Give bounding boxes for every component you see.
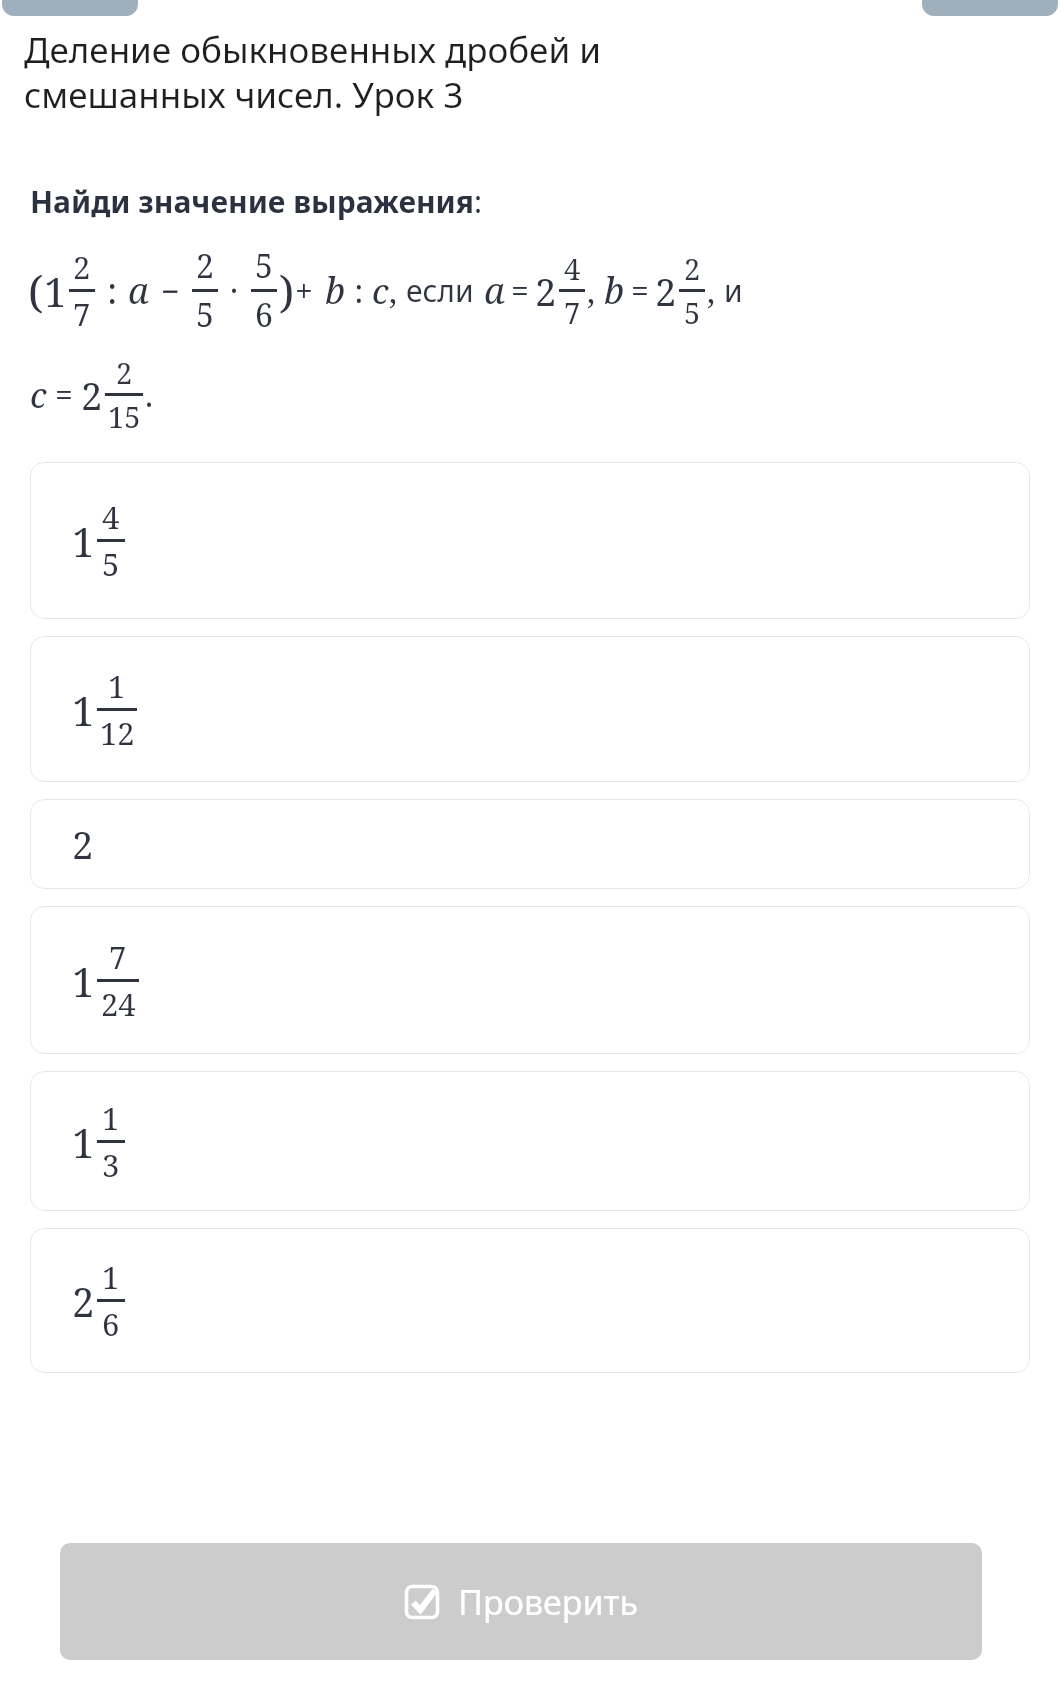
- staticText: 1: [72, 683, 95, 737]
- staticText: 2: [72, 818, 94, 870]
- staticText: 1: [44, 264, 67, 318]
- staticText: 5: [255, 244, 273, 288]
- staticText: 15: [108, 397, 141, 436]
- staticText: +: [295, 269, 313, 313]
- button[interactable]: 1: [30, 636, 1030, 782]
- button[interactable]: 2: [30, 799, 1030, 889]
- staticText: 5: [684, 293, 701, 332]
- staticText: Найди значение выражения: [30, 181, 474, 222]
- staticText: 12: [100, 712, 135, 754]
- staticText: :: [346, 269, 372, 313]
- staticText: 2: [196, 244, 214, 288]
- button[interactable]: 1: [30, 1071, 1030, 1211]
- staticText: 6: [255, 293, 273, 337]
- staticText: 3: [102, 1144, 120, 1186]
- button[interactable]: 1: [30, 906, 1030, 1054]
- staticText: 1: [102, 1097, 120, 1139]
- staticText: 2: [81, 369, 103, 421]
- staticText: 1: [108, 665, 126, 707]
- staticText: 6: [102, 1303, 120, 1345]
- staticText: ): [279, 261, 295, 321]
- staticText: c: [372, 268, 389, 314]
- staticText: 7: [109, 936, 127, 978]
- staticText: 2: [535, 265, 557, 317]
- staticText: 4: [564, 249, 581, 288]
- staticText: 24: [101, 983, 136, 1025]
- staticText: b: [604, 266, 625, 315]
- staticText: 5: [102, 543, 120, 585]
- staticText: b: [325, 266, 346, 315]
- staticText: ,: [707, 269, 716, 313]
- staticText: 2: [684, 249, 701, 288]
- staticText: ,: [389, 269, 398, 313]
- staticText: 2: [655, 265, 677, 317]
- staticText: c: [30, 372, 47, 418]
- staticText: −: [161, 269, 180, 313]
- staticText: a: [128, 266, 149, 315]
- staticText: 1: [72, 514, 95, 568]
- staticText: :: [107, 266, 118, 315]
- staticText: Деление обыкновенных дробей и смешанных …: [24, 26, 601, 119]
- staticText: и: [724, 270, 743, 311]
- staticText: (: [28, 261, 44, 321]
- button[interactable]: Проверить: [60, 1543, 982, 1660]
- staticText: 5: [196, 293, 214, 337]
- staticText: 7: [73, 293, 91, 335]
- button[interactable]: 1: [30, 462, 1030, 619]
- staticText: =: [631, 269, 649, 313]
- staticText: a: [484, 266, 505, 315]
- staticText: если: [406, 270, 474, 311]
- staticText: 1: [72, 1115, 95, 1169]
- staticText: 1: [102, 1256, 120, 1298]
- staticText: ,: [587, 269, 596, 313]
- staticText: Проверить: [458, 1579, 638, 1625]
- staticText: 2: [73, 246, 91, 288]
- staticText: 4: [102, 496, 120, 538]
- staticText: 2: [116, 353, 133, 392]
- staticText: =: [55, 373, 73, 417]
- button[interactable]: 2: [30, 1228, 1030, 1373]
- staticText: 2: [72, 1274, 95, 1328]
- staticText: :: [474, 181, 483, 222]
- staticText: 7: [564, 293, 581, 332]
- staticText: =: [511, 269, 529, 313]
- staticText: ·: [230, 269, 239, 313]
- staticText: 1: [72, 954, 95, 1008]
- staticText: .: [145, 373, 154, 417]
